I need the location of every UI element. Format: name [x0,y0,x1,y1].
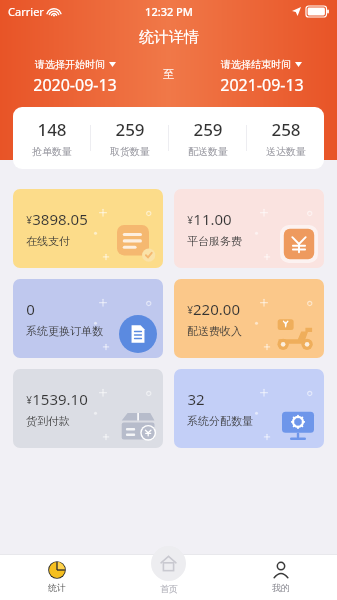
staticText: 平台服务费 [187,234,242,248]
staticText: ¥ [187,213,193,227]
staticText: 系统分配数量 [187,414,253,428]
staticText: 配送费收入 [187,324,242,338]
staticText: ¥ [26,393,32,407]
button[interactable]: 我的 [225,554,337,600]
staticText: 货到付款 [26,414,70,428]
staticText: 2020-09-13 [33,74,117,96]
staticText: ¥ [26,213,32,227]
staticText: 配送数量 [188,145,228,158]
button[interactable]: 请选择开始时间 [0,57,150,97]
staticText: 统计详情 [139,28,199,47]
staticText: 在线支付 [26,234,70,248]
staticText: 请选择开始时间 [35,58,105,71]
staticText: 12:32 PM [145,4,193,19]
button[interactable]: 259 [169,107,246,169]
staticText: 2021-09-13 [220,74,304,96]
button[interactable]: 首页 [151,546,186,594]
staticText: 148 [37,118,67,141]
staticText: 32 [187,389,205,409]
button[interactable]: ¥ [174,189,324,268]
button[interactable]: 258 [247,107,324,169]
staticText: 系统更换订单数 [26,324,103,338]
staticText: Carrier [8,4,44,19]
staticText: 抢单数量 [32,145,72,158]
staticText: 11.00 [193,209,232,229]
staticText: 送达数量 [266,145,306,158]
staticText: 3898.05 [32,209,88,229]
staticText: 我的 [272,582,290,593]
button[interactable]: ¥ [174,279,324,358]
button[interactable]: ¥ [13,369,163,448]
staticText: 258 [271,118,301,141]
button[interactable]: 148 [13,107,90,169]
staticText: 259 [193,118,223,141]
button[interactable]: 统计 [0,554,113,600]
button[interactable]: 0 [13,279,163,358]
button[interactable]: ¥ [13,189,163,268]
staticText: 1539.10 [32,389,88,409]
button[interactable]: 32 [174,369,324,448]
staticText: 请选择结束时间 [221,58,291,71]
staticText: ¥ [187,303,193,317]
staticText: 0 [26,299,35,319]
button[interactable]: 请选择结束时间 [186,57,337,97]
staticText: 首页 [160,583,178,594]
staticText: 统计 [48,582,66,593]
staticText: 至 [163,67,174,81]
staticText: 259 [115,118,145,141]
staticText: 取货数量 [110,145,150,158]
staticText: 220.00 [193,299,240,319]
button[interactable]: 259 [91,107,168,169]
